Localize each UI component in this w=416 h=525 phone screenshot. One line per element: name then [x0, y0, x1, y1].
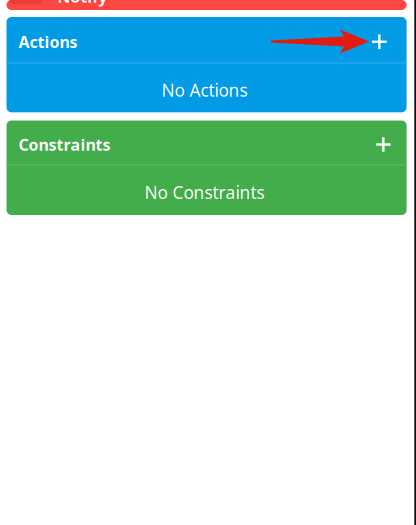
button[interactable]: Constraints	[6, 120, 407, 164]
staticText: No Constraints	[145, 181, 265, 204]
button[interactable]: Notify	[6, 0, 407, 10]
button[interactable]: No Actions	[6, 63, 407, 112]
staticText: Constraints	[18, 134, 110, 155]
staticText: Notify	[57, 0, 107, 7]
button[interactable]: Actions	[6, 17, 407, 62]
staticText: No Actions	[162, 78, 248, 101]
staticText: Actions	[18, 31, 77, 52]
button[interactable]: No Constraints	[6, 165, 407, 215]
